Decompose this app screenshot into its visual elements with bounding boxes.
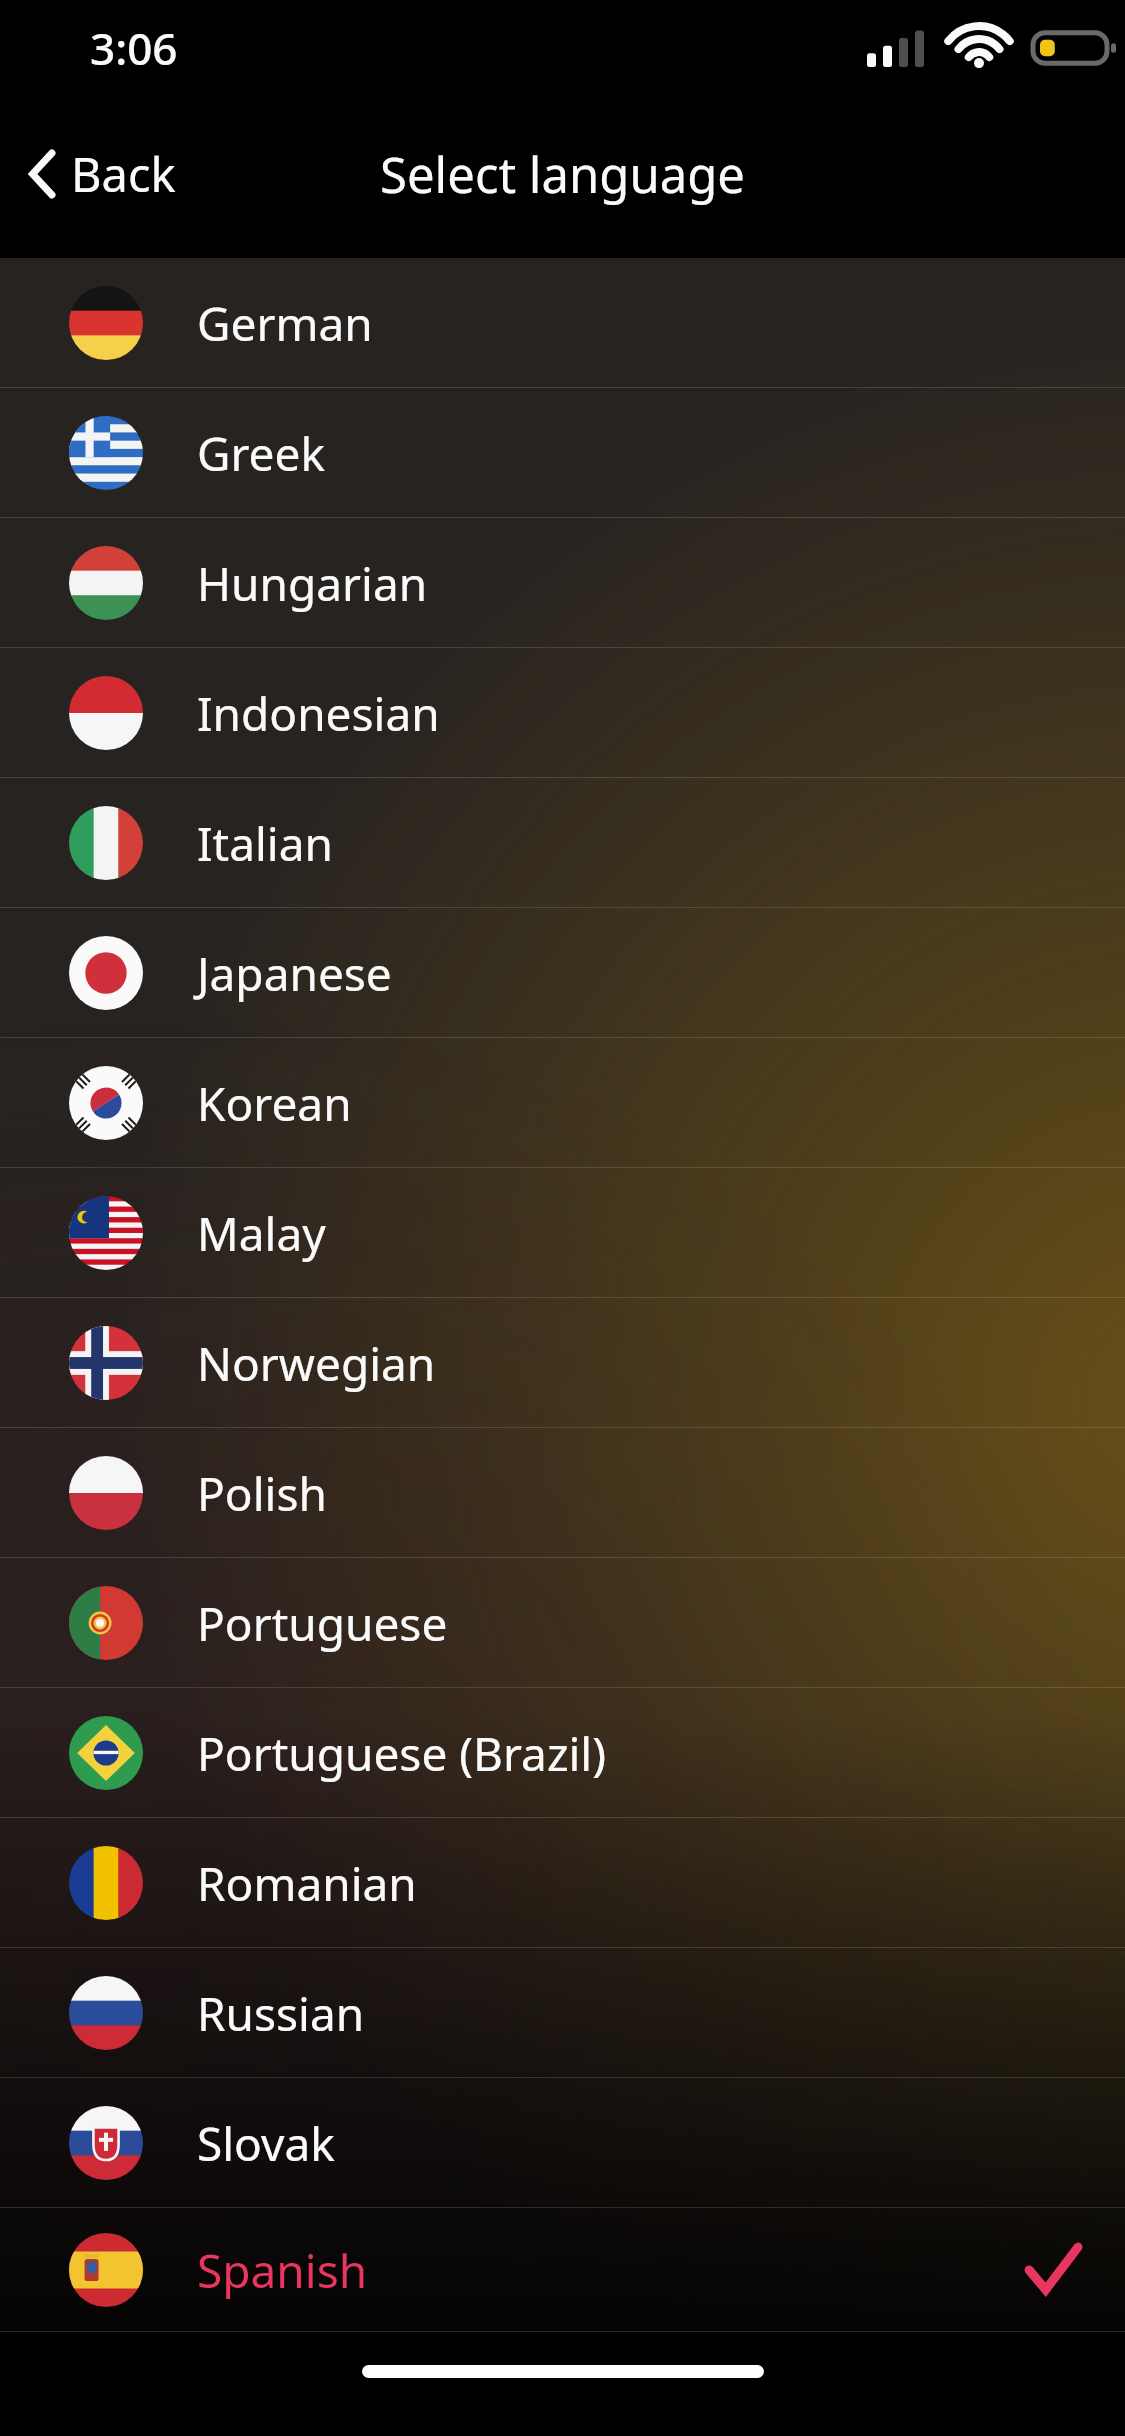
staticText: Portuguese (Brazil) [197,1722,607,1785]
staticText: Select language [380,141,745,208]
staticText: Greek [197,422,326,485]
staticText: Italian [197,812,333,875]
staticText: German [197,292,373,355]
staticText: Japanese [197,942,392,1005]
other: Selected [1027,2244,1079,2296]
button[interactable]: Indonesian [0,648,1125,778]
staticText: Back [71,142,176,206]
staticText: 3:06 [90,18,178,78]
button[interactable]: Norwegian [0,1298,1125,1428]
staticText: Polish [197,1462,327,1525]
staticText: Indonesian [197,682,440,745]
button[interactable]: Slovak [0,2078,1125,2208]
staticText: Russian [197,1982,365,2045]
button[interactable]: Malay [0,1168,1125,1298]
button[interactable]: Polish [0,1428,1125,1558]
button[interactable]: Portuguese (Brazil) [0,1688,1125,1818]
button[interactable]: Russian [0,1948,1125,2078]
staticText: Slovak [197,2112,335,2175]
button[interactable]: Italian [0,778,1125,908]
staticText: Korean [197,1072,352,1135]
button[interactable]: Korean [0,1038,1125,1168]
other: Back [30,151,55,197]
button[interactable]: Hungarian [0,518,1125,648]
button[interactable]: Greek [0,388,1125,518]
button[interactable]: Back [0,109,202,239]
button[interactable]: Portuguese [0,1558,1125,1688]
button[interactable]: German [0,258,1125,388]
staticText: Portuguese [197,1592,448,1655]
staticText: Spanish [197,2239,368,2302]
staticText: Norwegian [197,1332,436,1395]
button[interactable]: Romanian [0,1818,1125,1948]
staticText: Romanian [197,1852,417,1915]
button[interactable]: Spanish [0,2208,1125,2332]
staticText: Hungarian [197,552,428,615]
button[interactable]: Japanese [0,908,1125,1038]
staticText: Malay [197,1202,326,1265]
